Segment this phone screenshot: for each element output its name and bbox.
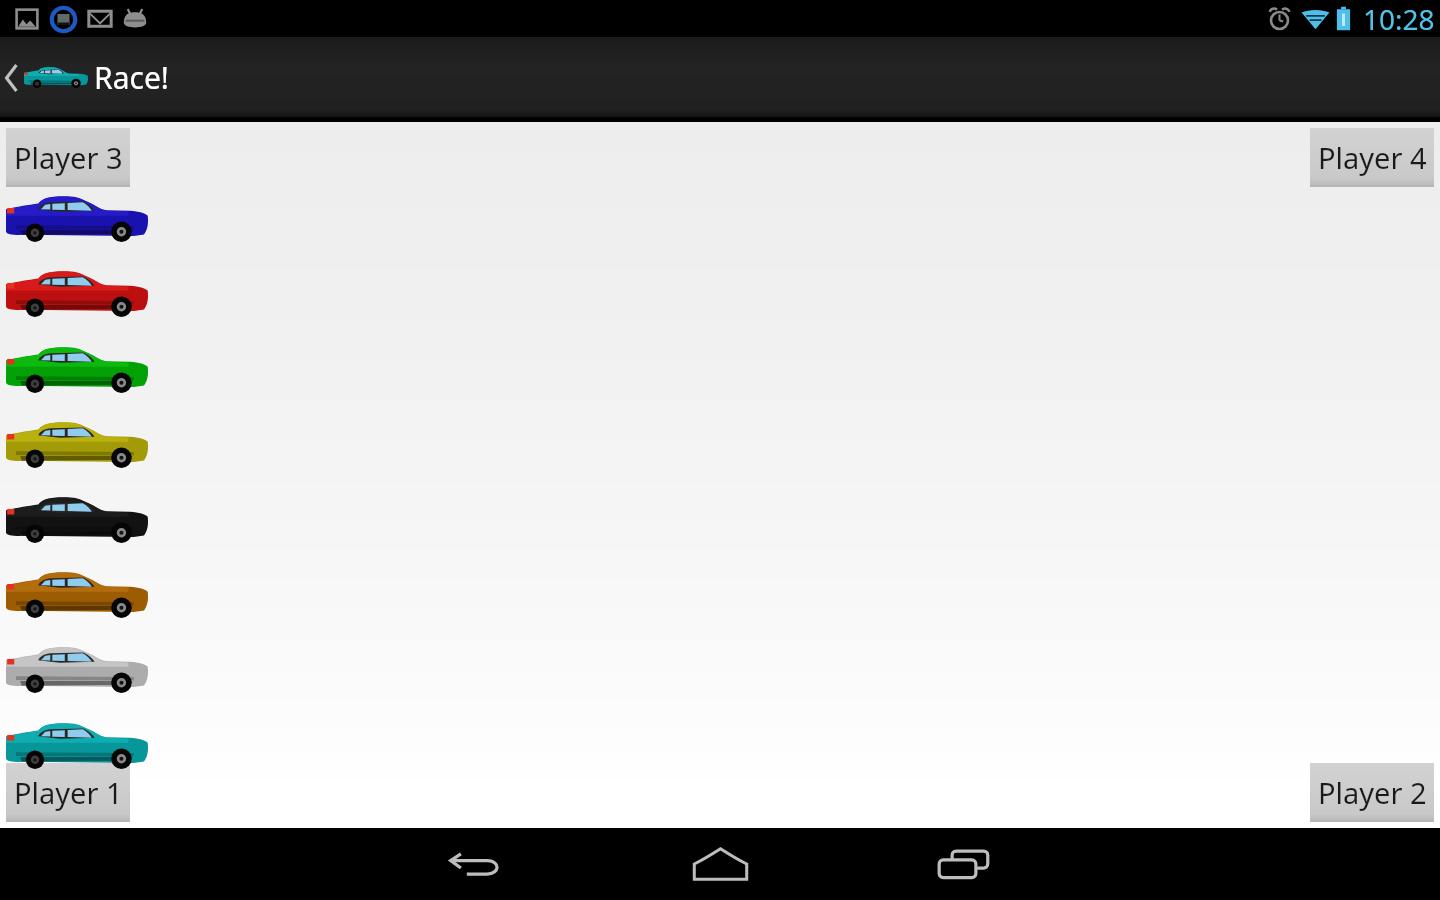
staticText: Player 1 bbox=[14, 773, 123, 812]
staticText: Player 3 bbox=[14, 138, 123, 177]
button[interactable]: Recent apps bbox=[842, 828, 1086, 900]
button[interactable]: Player 3 bbox=[6, 128, 130, 187]
staticText: Player 2 bbox=[1318, 773, 1427, 812]
button[interactable]: Player 2 bbox=[1310, 763, 1434, 822]
button[interactable]: Back bbox=[354, 828, 598, 900]
staticText: 10:28 bbox=[1363, 0, 1435, 37]
staticText: Player 4 bbox=[1318, 138, 1427, 177]
staticText: Race! bbox=[94, 57, 169, 98]
button[interactable]: Navigate up bbox=[0, 37, 94, 118]
button[interactable]: Player 1 bbox=[6, 763, 130, 822]
button[interactable]: Player 4 bbox=[1310, 128, 1434, 187]
button[interactable]: Home bbox=[598, 828, 842, 900]
